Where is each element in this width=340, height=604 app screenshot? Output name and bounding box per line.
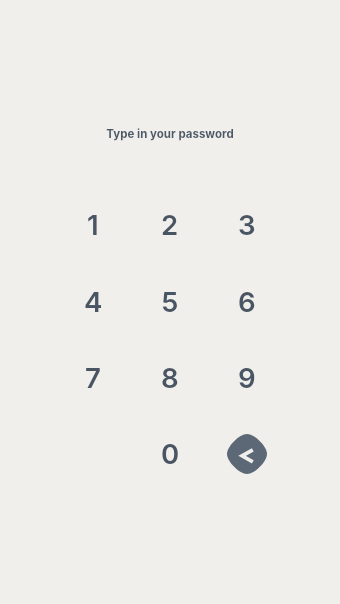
staticText: 6 bbox=[238, 285, 256, 318]
button[interactable]: 7 bbox=[61, 345, 125, 409]
staticText: 2 bbox=[161, 208, 179, 241]
staticText: Type in your password bbox=[106, 127, 234, 141]
staticText: 5 bbox=[161, 285, 179, 318]
button[interactable]: 3 bbox=[215, 192, 279, 256]
staticText: 0 bbox=[161, 437, 180, 470]
button[interactable]: Delete bbox=[215, 422, 279, 486]
button[interactable]: 4 bbox=[61, 269, 125, 333]
staticText: 4 bbox=[84, 285, 103, 318]
button[interactable]: 6 bbox=[215, 269, 279, 333]
button[interactable]: 0 bbox=[138, 421, 202, 485]
staticText: 7 bbox=[85, 361, 101, 394]
staticText: 8 bbox=[161, 361, 179, 394]
button[interactable]: 1 bbox=[61, 192, 125, 256]
staticText: 1 bbox=[87, 208, 99, 241]
button[interactable]: 8 bbox=[138, 345, 202, 409]
button[interactable]: 5 bbox=[138, 269, 202, 333]
button[interactable]: 9 bbox=[215, 345, 279, 409]
button[interactable]: 2 bbox=[138, 192, 202, 256]
staticText: 3 bbox=[238, 208, 256, 241]
staticText: 9 bbox=[238, 361, 256, 394]
